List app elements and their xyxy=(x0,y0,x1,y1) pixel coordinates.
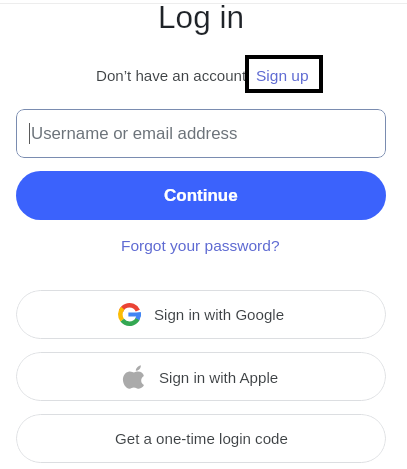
button[interactable]: Continue xyxy=(16,171,386,220)
button[interactable]: Forgot your password? xyxy=(118,234,283,257)
other: Google xyxy=(118,303,141,326)
button[interactable]: Google xyxy=(16,290,386,339)
other: Apple xyxy=(123,365,144,389)
staticText: Username or email address xyxy=(31,124,238,143)
staticText: Continue xyxy=(164,186,238,205)
staticText: Sign up xyxy=(256,67,309,84)
staticText: Don’t have an account? xyxy=(96,67,255,84)
button[interactable]: Sign up xyxy=(245,55,323,93)
staticText: Log in xyxy=(158,0,244,34)
staticText: Forgot your password? xyxy=(121,237,280,254)
button[interactable]: Username or email address xyxy=(16,109,386,158)
button[interactable]: Get a one-time login code xyxy=(16,414,386,463)
staticText: Sign in with Apple xyxy=(159,369,279,386)
staticText: Get a one-time login code xyxy=(115,430,288,447)
staticText: Sign in with Google xyxy=(154,306,285,323)
button[interactable]: Apple xyxy=(16,352,386,401)
